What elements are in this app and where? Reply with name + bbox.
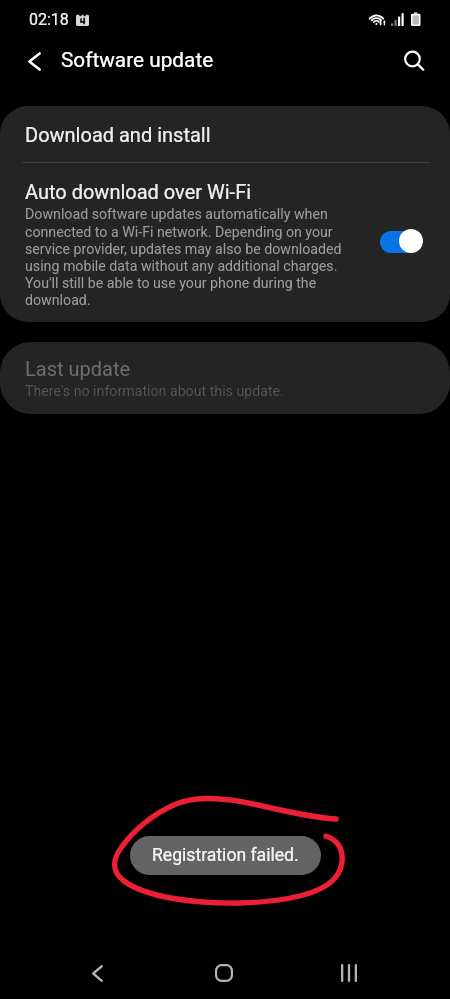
staticText: Software update (61, 48, 214, 72)
staticText: Download and install (25, 123, 211, 146)
button[interactable]: Navigate up (10, 37, 58, 85)
button[interactable]: Auto download over Wi-Fi toggle (380, 229, 422, 253)
staticText: Registration failed. (152, 845, 299, 866)
staticText: Auto download over Wi-Fi (25, 180, 252, 203)
button[interactable]: Back (73, 949, 121, 997)
staticText: Last update (25, 357, 131, 380)
staticText: 02:18 (29, 10, 69, 29)
button[interactable]: Last update (0, 342, 450, 414)
button[interactable]: Home (200, 949, 248, 997)
staticText: Download software updates automatically … (25, 206, 357, 308)
button[interactable]: Recent apps (325, 949, 373, 997)
staticText: There's no information about this update… (25, 383, 284, 400)
button[interactable]: Download and install (0, 106, 450, 162)
button[interactable]: Search (392, 39, 436, 83)
button[interactable]: Auto download over Wi-Fi (0, 163, 450, 322)
